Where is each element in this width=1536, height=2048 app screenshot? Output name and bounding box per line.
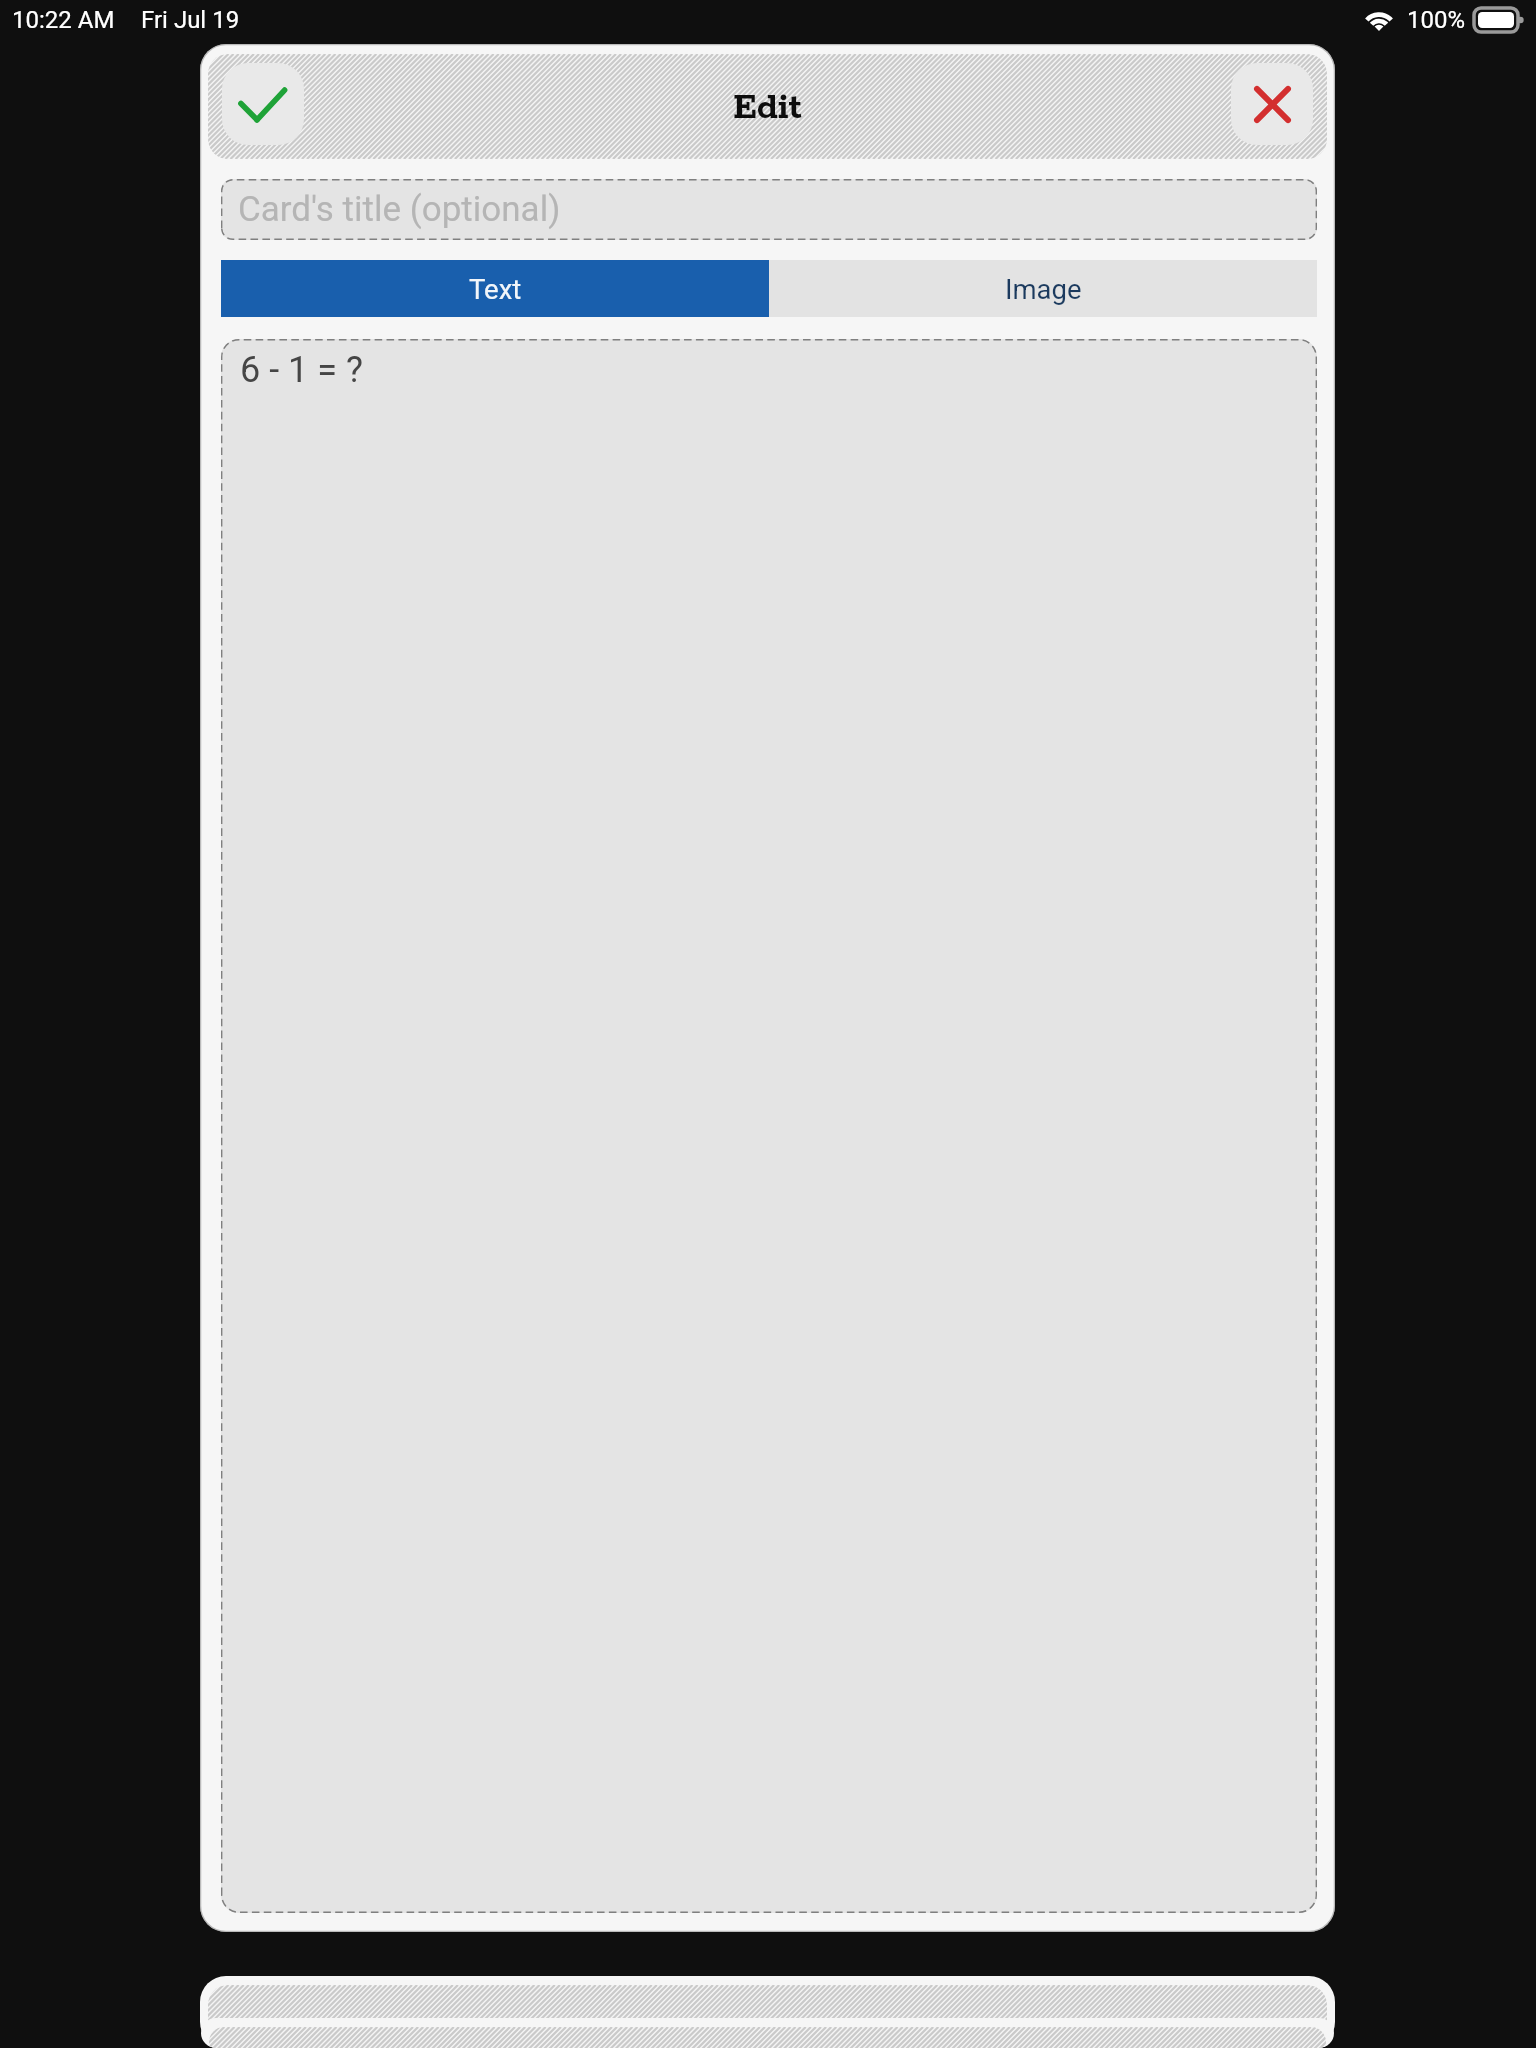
staticText: 6 - 1 = ? — [240, 349, 363, 391]
staticText: Edit — [733, 86, 802, 131]
button[interactable]: Card's title (optional) — [221, 179, 1317, 240]
button[interactable]: Next card — [200, 1976, 1335, 2048]
staticText: Fri Jul 19 — [141, 6, 240, 34]
staticText: Card's title (optional) — [238, 189, 561, 230]
button[interactable]: Save — [222, 63, 304, 145]
staticText: Text — [469, 273, 522, 305]
button[interactable]: Close — [1231, 63, 1313, 145]
button[interactable]: Image — [769, 260, 1317, 317]
staticText: Image — [1005, 273, 1082, 305]
button[interactable]: 6 - 1 = ? — [221, 339, 1317, 1913]
staticText: 100% — [1407, 6, 1466, 34]
staticText: 10:22 AM — [12, 6, 115, 34]
button[interactable]: Text — [221, 260, 769, 317]
